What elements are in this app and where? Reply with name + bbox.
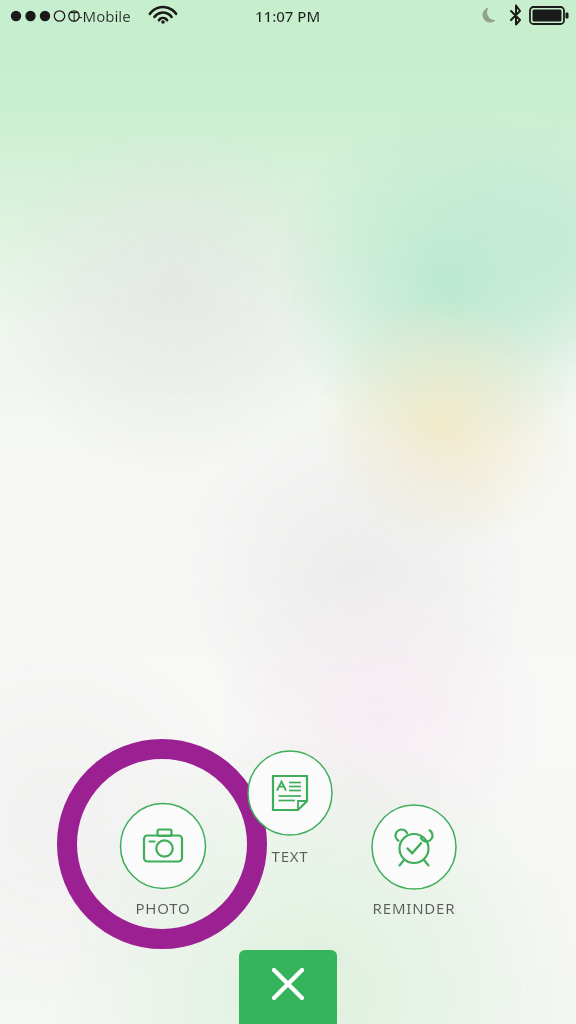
button[interactable]: Text [248, 748, 336, 870]
button[interactable]: Close [239, 950, 337, 1024]
button[interactable]: Reminder [372, 800, 460, 922]
button[interactable]: Photo [57, 740, 269, 930]
